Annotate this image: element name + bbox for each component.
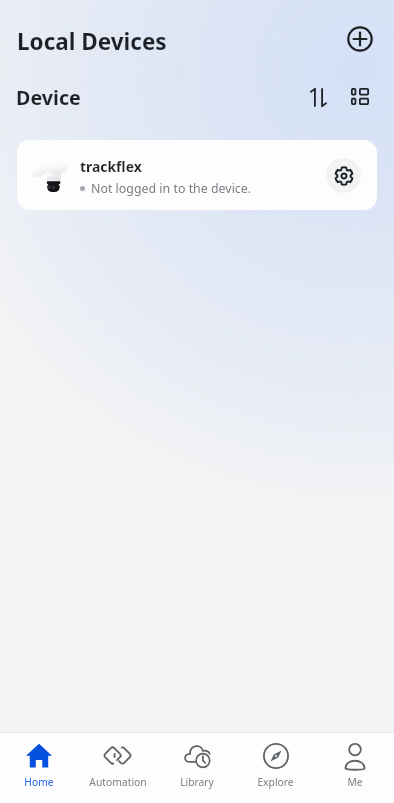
staticText: Local Devices	[17, 26, 167, 57]
button[interactable]: Automation	[78, 733, 157, 803]
button[interactable]: Library	[157, 733, 236, 803]
staticText: Home	[24, 775, 54, 789]
button[interactable]: Sort	[302, 81, 334, 113]
staticText: Not logged in to the device.	[91, 180, 252, 197]
staticText: Explore	[257, 775, 294, 789]
button[interactable]: Change layout	[344, 80, 376, 112]
staticText: Device	[16, 84, 81, 111]
button[interactable]: Home	[0, 733, 78, 803]
button[interactable]: Explore	[236, 733, 315, 803]
button[interactable]: Me	[315, 733, 394, 803]
button[interactable]: Device settings	[326, 158, 361, 193]
staticText: Library	[180, 775, 214, 789]
staticText: Automation	[89, 775, 147, 789]
staticText: Me	[347, 775, 363, 789]
button[interactable]: Add device	[341, 20, 379, 58]
staticText: trackflex	[80, 157, 142, 176]
button[interactable]: trackflex	[17, 140, 377, 210]
